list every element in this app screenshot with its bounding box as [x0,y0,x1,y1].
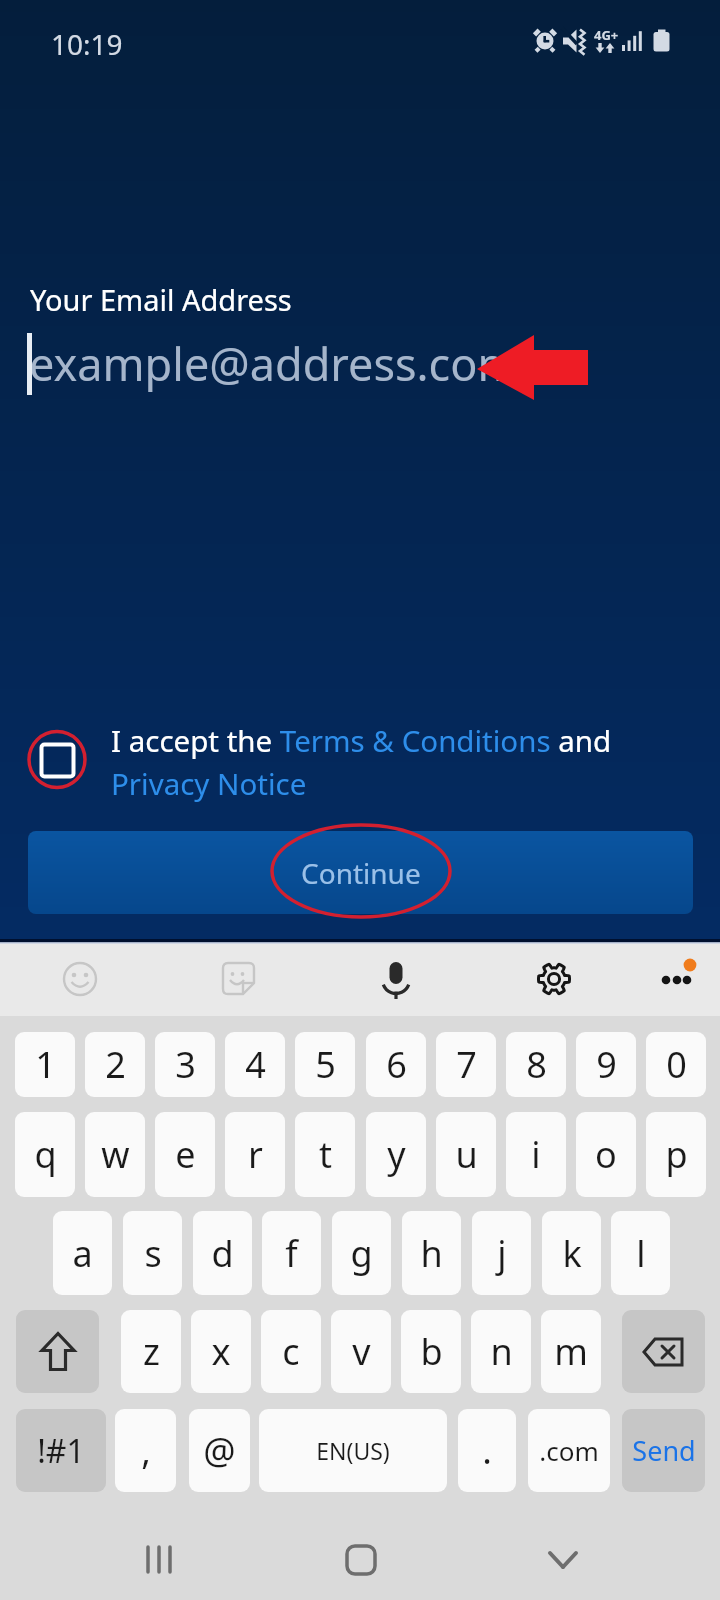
button[interactable]: Continue [28,831,693,914]
staticText: t [319,1130,332,1179]
staticText: v [352,1327,371,1376]
button[interactable]: z [121,1310,181,1393]
button[interactable]: . [458,1409,516,1492]
button[interactable]: @ [189,1409,250,1492]
button[interactable]: Accept terms checkbox [14,714,634,806]
staticText: EN(US) [316,1435,390,1466]
staticText: 2 [105,1040,126,1089]
button[interactable]: 8 [506,1032,566,1097]
button[interactable]: Backspace [622,1310,705,1393]
staticText: d [211,1229,234,1278]
staticText: .com [539,1433,599,1468]
button[interactable]: l [611,1211,670,1295]
staticText: 4 [245,1040,266,1089]
button[interactable]: r [225,1112,285,1197]
button[interactable]: m [541,1310,601,1393]
button[interactable]: Your Email Address [0,270,720,405]
staticText: 10:19 [51,25,123,63]
button[interactable]: 1 [15,1032,75,1097]
button[interactable]: i [506,1112,566,1197]
staticText: , [141,1426,151,1475]
button[interactable]: e [155,1112,215,1197]
staticText: example@address.com [29,333,520,394]
staticText: 3 [175,1040,196,1089]
button[interactable]: k [542,1211,601,1295]
staticText: 5 [315,1040,336,1089]
staticText: k [562,1229,582,1278]
button[interactable]: Emoji [44,943,116,1016]
button[interactable]: p [646,1112,706,1197]
staticText: 0 [666,1040,687,1089]
button[interactable]: 3 [155,1032,215,1097]
button[interactable]: !#1 [16,1409,106,1492]
button[interactable]: f [262,1211,321,1295]
staticText: 8 [526,1040,547,1089]
button[interactable]: h [402,1211,461,1295]
button[interactable]: 4 [225,1032,285,1097]
staticText: Send [632,1432,696,1469]
button[interactable]: EN(US) [259,1409,447,1492]
staticText: @ [203,1426,236,1475]
button[interactable]: a [53,1211,112,1295]
button[interactable]: Recents [118,1492,202,1600]
staticText: 7 [456,1040,477,1089]
staticText: !#1 [37,1429,85,1473]
button[interactable]: n [471,1310,531,1393]
staticText: n [490,1327,513,1376]
button[interactable]: Hide keyboard [521,1492,605,1600]
staticText: z [143,1327,160,1376]
button[interactable]: o [576,1112,636,1197]
staticText: i [531,1130,541,1179]
staticText: s [144,1229,162,1278]
button[interactable]: w [85,1112,145,1197]
staticText: Continue [301,854,421,892]
staticText: o [595,1130,617,1179]
button[interactable]: Keyboard settings [518,943,590,1016]
staticText: p [665,1130,688,1179]
button[interactable]: 9 [576,1032,636,1097]
button[interactable]: Home [319,1492,403,1600]
staticText: x [211,1327,231,1376]
button[interactable]: g [332,1211,391,1295]
button[interactable]: u [436,1112,496,1197]
button[interactable]: j [472,1211,531,1295]
staticText: a [72,1229,93,1278]
staticText: m [554,1327,588,1376]
button[interactable]: v [331,1310,391,1393]
staticText: r [248,1130,263,1179]
button[interactable]: , [115,1409,176,1492]
staticText: l [636,1229,646,1278]
button[interactable]: x [191,1310,251,1393]
button[interactable]: 0 [646,1032,706,1097]
button[interactable]: t [295,1112,355,1197]
staticText: I accept the Terms & Conditions and Priv… [111,720,621,803]
button[interactable]: s [123,1211,182,1295]
staticText: u [455,1130,478,1179]
staticText: b [420,1327,443,1376]
button[interactable]: Voice input [360,943,432,1016]
staticText: 1 [35,1040,56,1089]
button[interactable]: q [15,1112,75,1197]
button[interactable]: Accept terms checkbox [14,714,100,806]
button[interactable]: 2 [85,1032,145,1097]
button[interactable]: 6 [366,1032,426,1097]
staticText: 6 [386,1040,407,1089]
staticText: 9 [596,1040,617,1089]
button[interactable]: b [401,1310,461,1393]
staticText: 4G+ [594,26,619,44]
button[interactable]: More options [648,943,720,1016]
button[interactable]: .com [528,1409,610,1492]
button[interactable]: 5 [295,1032,355,1097]
staticText: . [482,1426,492,1475]
button[interactable]: Send [622,1409,705,1492]
button[interactable]: Shift [16,1310,99,1393]
staticText: q [34,1130,57,1179]
button[interactable]: 7 [436,1032,496,1097]
staticText: h [420,1229,443,1278]
button[interactable]: d [193,1211,252,1295]
button[interactable]: c [261,1310,321,1393]
staticText: y [387,1130,406,1179]
button[interactable]: Stickers [202,943,274,1016]
staticText: Your Email Address [30,280,292,319]
button[interactable]: y [366,1112,426,1197]
